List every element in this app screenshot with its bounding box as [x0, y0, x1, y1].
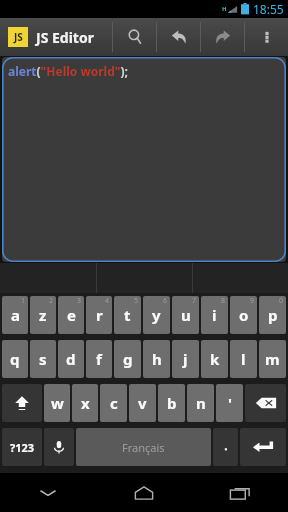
button[interactable]: r	[86, 296, 112, 334]
button[interactable]: e	[58, 296, 84, 334]
staticText: ?123	[10, 440, 35, 455]
staticText: v	[138, 393, 147, 413]
button[interactable]: g	[114, 340, 141, 378]
staticText: z	[39, 305, 47, 325]
button[interactable]: b	[158, 384, 185, 422]
staticText: y	[152, 305, 161, 325]
button[interactable]: h	[143, 340, 170, 378]
staticText: JS	[14, 30, 23, 44]
staticText: c	[110, 393, 118, 413]
button[interactable]: Voice input	[44, 428, 74, 466]
button[interactable]: w	[44, 384, 70, 422]
staticText: x	[81, 393, 90, 413]
button[interactable]: Shift	[2, 384, 42, 422]
button[interactable]: d	[58, 340, 84, 378]
button[interactable]: q	[2, 340, 28, 378]
button[interactable]: Period	[213, 428, 238, 466]
staticText: 9	[250, 296, 255, 306]
staticText: d	[66, 349, 76, 369]
staticText: n	[196, 393, 206, 413]
staticText: a	[11, 305, 20, 325]
button[interactable]: z	[30, 296, 56, 334]
staticText: 5	[134, 296, 139, 306]
staticText: 6	[163, 296, 168, 306]
staticText: u	[181, 305, 191, 325]
staticText: '	[228, 393, 232, 413]
staticText: k	[210, 349, 220, 369]
staticText: t	[124, 305, 131, 325]
staticText: 8	[221, 296, 226, 306]
button[interactable]: i	[201, 296, 228, 334]
staticText: j	[183, 349, 188, 369]
staticText: 18:55	[253, 1, 284, 17]
button[interactable]: Search	[113, 18, 156, 56]
button[interactable]: j	[172, 340, 199, 378]
button[interactable]: f	[86, 340, 112, 378]
button[interactable]: x	[72, 384, 98, 422]
staticText: f	[96, 349, 102, 369]
staticText: alert("Hello world");	[8, 63, 128, 79]
button[interactable]: s	[30, 340, 56, 378]
staticText: 1	[21, 296, 26, 306]
staticText: h	[152, 349, 162, 369]
staticText: JS Editor	[36, 28, 94, 47]
button[interactable]: v	[129, 384, 156, 422]
button[interactable]: Recent apps	[192, 473, 288, 512]
button[interactable]: Undo	[157, 18, 200, 56]
staticText: 2	[49, 296, 54, 306]
button[interactable]: c	[100, 384, 127, 422]
button[interactable]: y	[143, 296, 170, 334]
staticText: H	[222, 5, 227, 13]
staticText: 4	[105, 296, 110, 306]
button[interactable]: p	[259, 296, 286, 334]
button[interactable]: More options	[245, 18, 288, 56]
button[interactable]: Français	[76, 428, 211, 466]
button[interactable]: Enter	[240, 428, 286, 466]
button[interactable]: a	[2, 296, 28, 334]
button[interactable]: Redo	[201, 18, 244, 56]
button[interactable]: JS	[0, 18, 112, 56]
staticText: b	[167, 393, 177, 413]
button[interactable]: m	[259, 340, 286, 378]
staticText: e	[67, 305, 76, 325]
staticText: Français	[122, 440, 165, 455]
staticText: w	[51, 393, 64, 413]
button[interactable]: Symbols	[2, 428, 42, 466]
button[interactable]: n	[187, 384, 214, 422]
staticText: 0	[279, 296, 284, 306]
staticText: q	[10, 349, 20, 369]
button[interactable]: t	[114, 296, 141, 334]
staticText: i	[212, 305, 217, 325]
staticText: o	[239, 305, 249, 325]
button[interactable]: l	[230, 340, 257, 378]
staticText: m	[265, 349, 280, 369]
button[interactable]: Home	[96, 473, 192, 512]
staticText: 3	[77, 296, 82, 306]
staticText: r	[96, 305, 103, 325]
staticText: p	[268, 305, 278, 325]
button[interactable]: Hide keyboard	[0, 473, 96, 512]
button[interactable]: k	[201, 340, 228, 378]
staticText: s	[39, 349, 47, 369]
staticText: l	[241, 349, 246, 369]
staticText: 7	[192, 296, 197, 306]
button[interactable]: o	[230, 296, 257, 334]
staticText: g	[123, 349, 133, 369]
button[interactable]: '	[216, 384, 243, 422]
button[interactable]: alert("Hello world");	[2, 57, 286, 262]
button[interactable]: Backspace	[245, 384, 286, 422]
button[interactable]: u	[172, 296, 199, 334]
